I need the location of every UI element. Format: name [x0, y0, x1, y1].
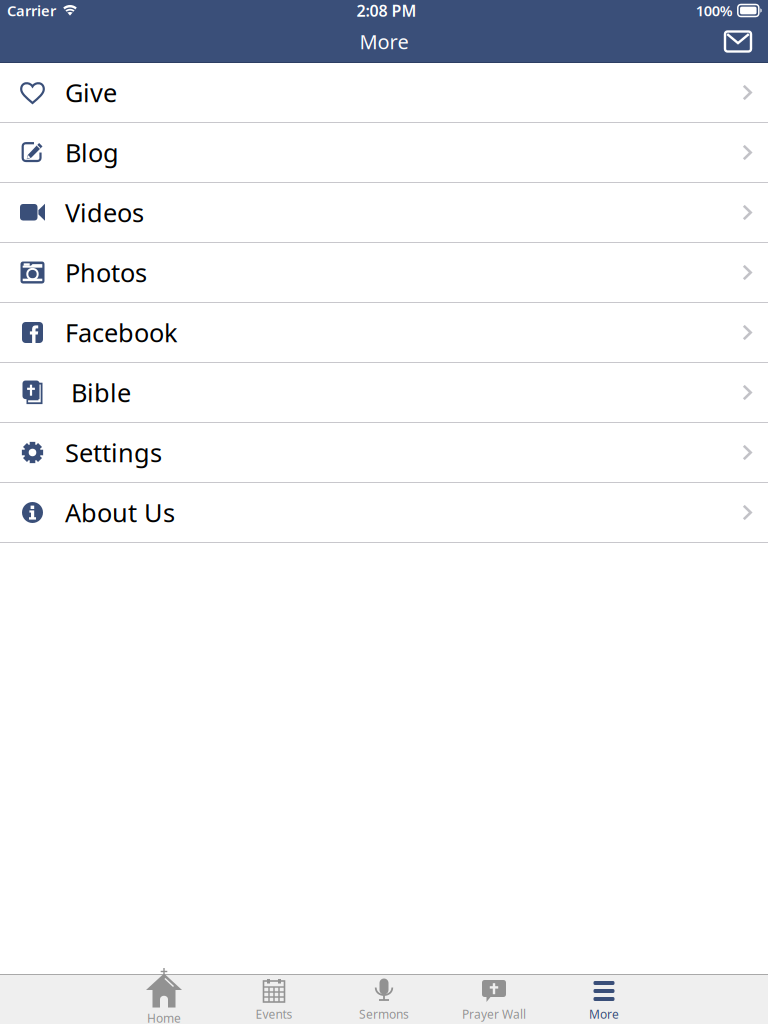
button[interactable]: Videos: [0, 183, 768, 243]
button[interactable]: Events: [219, 975, 329, 1024]
staticText: Facebook: [65, 316, 178, 349]
staticText: About Us: [65, 496, 175, 529]
staticText: Home: [147, 1010, 181, 1024]
staticText: 2:08 PM: [356, 0, 416, 21]
button[interactable]: Prayer Wall: [439, 975, 549, 1024]
button[interactable]: Photos: [0, 243, 768, 303]
staticText: Give: [65, 76, 117, 109]
button[interactable]: Sermons: [329, 975, 439, 1024]
staticText: Events: [255, 1006, 292, 1022]
button[interactable]: About Us: [0, 483, 768, 543]
button[interactable]: Messages: [716, 21, 760, 61]
staticText: Sermons: [359, 1006, 409, 1022]
staticText: More: [359, 28, 408, 55]
button[interactable]: Settings: [0, 423, 768, 483]
button[interactable]: Home: [109, 975, 219, 1024]
staticText: Prayer Wall: [462, 1006, 526, 1022]
button[interactable]: Blog: [0, 123, 768, 183]
button[interactable]: Facebook: [0, 303, 768, 363]
staticText: More: [589, 1006, 619, 1022]
staticText: Settings: [65, 436, 162, 469]
staticText: Videos: [65, 196, 144, 229]
button[interactable]: More: [549, 975, 659, 1024]
staticText: Carrier: [7, 1, 56, 20]
button[interactable]: Bible: [0, 363, 768, 423]
button[interactable]: Give: [0, 63, 768, 123]
staticText: Bible: [71, 376, 131, 409]
staticText: Blog: [65, 136, 119, 169]
staticText: 100%: [696, 1, 733, 20]
staticText: Photos: [65, 256, 147, 289]
